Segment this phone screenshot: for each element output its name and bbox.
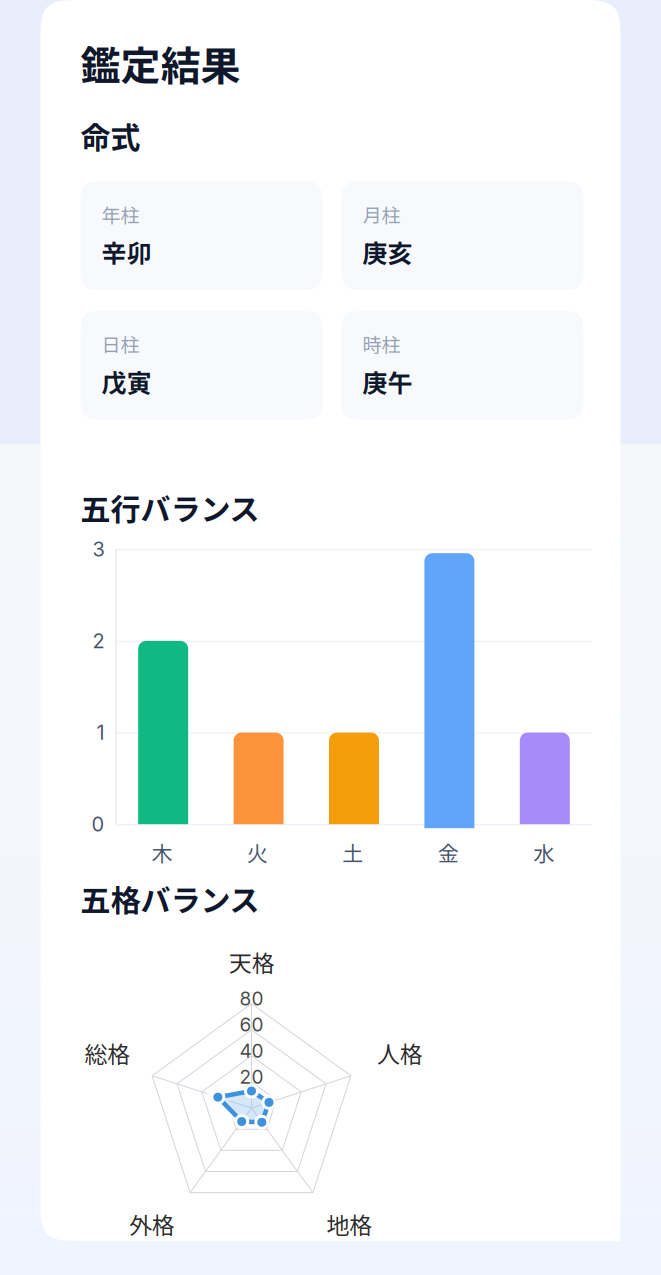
- staticText: 五行バランス: [80, 486, 259, 529]
- staticText: 命式: [80, 114, 140, 157]
- staticText: 庚午: [362, 364, 412, 400]
- staticText: 外格: [129, 1207, 175, 1241]
- staticText: 火: [247, 837, 268, 868]
- staticText: 地格: [326, 1207, 372, 1241]
- staticText: 年柱: [101, 200, 139, 228]
- button[interactable]: 月柱: [341, 181, 583, 290]
- staticText: 3: [92, 537, 104, 561]
- staticText: 月柱: [362, 200, 400, 228]
- staticText: 土: [342, 837, 363, 868]
- staticText: 時柱: [362, 330, 400, 358]
- staticText: 40: [239, 1039, 263, 1062]
- staticText: 水: [533, 837, 554, 868]
- staticText: 木: [152, 837, 173, 868]
- staticText: 人格: [377, 1036, 423, 1070]
- staticText: 20: [239, 1065, 263, 1088]
- staticText: 1: [96, 720, 104, 745]
- staticText: 庚亥: [362, 234, 412, 270]
- staticText: 日柱: [101, 330, 139, 358]
- staticText: 天格: [229, 945, 275, 979]
- staticText: 2: [92, 629, 104, 653]
- staticText: 80: [239, 987, 263, 1010]
- staticText: 0: [91, 812, 104, 836]
- button[interactable]: 年柱: [80, 181, 322, 290]
- staticText: 60: [239, 1013, 263, 1036]
- staticText: 辛卯: [101, 234, 151, 270]
- staticText: 鑑定結果: [80, 34, 240, 92]
- button[interactable]: 時柱: [341, 311, 583, 420]
- staticText: 五格バランス: [80, 877, 259, 920]
- button[interactable]: 日柱: [80, 311, 322, 420]
- staticText: 戊寅: [101, 364, 151, 400]
- staticText: 総格: [84, 1036, 130, 1070]
- staticText: 金: [438, 837, 459, 868]
